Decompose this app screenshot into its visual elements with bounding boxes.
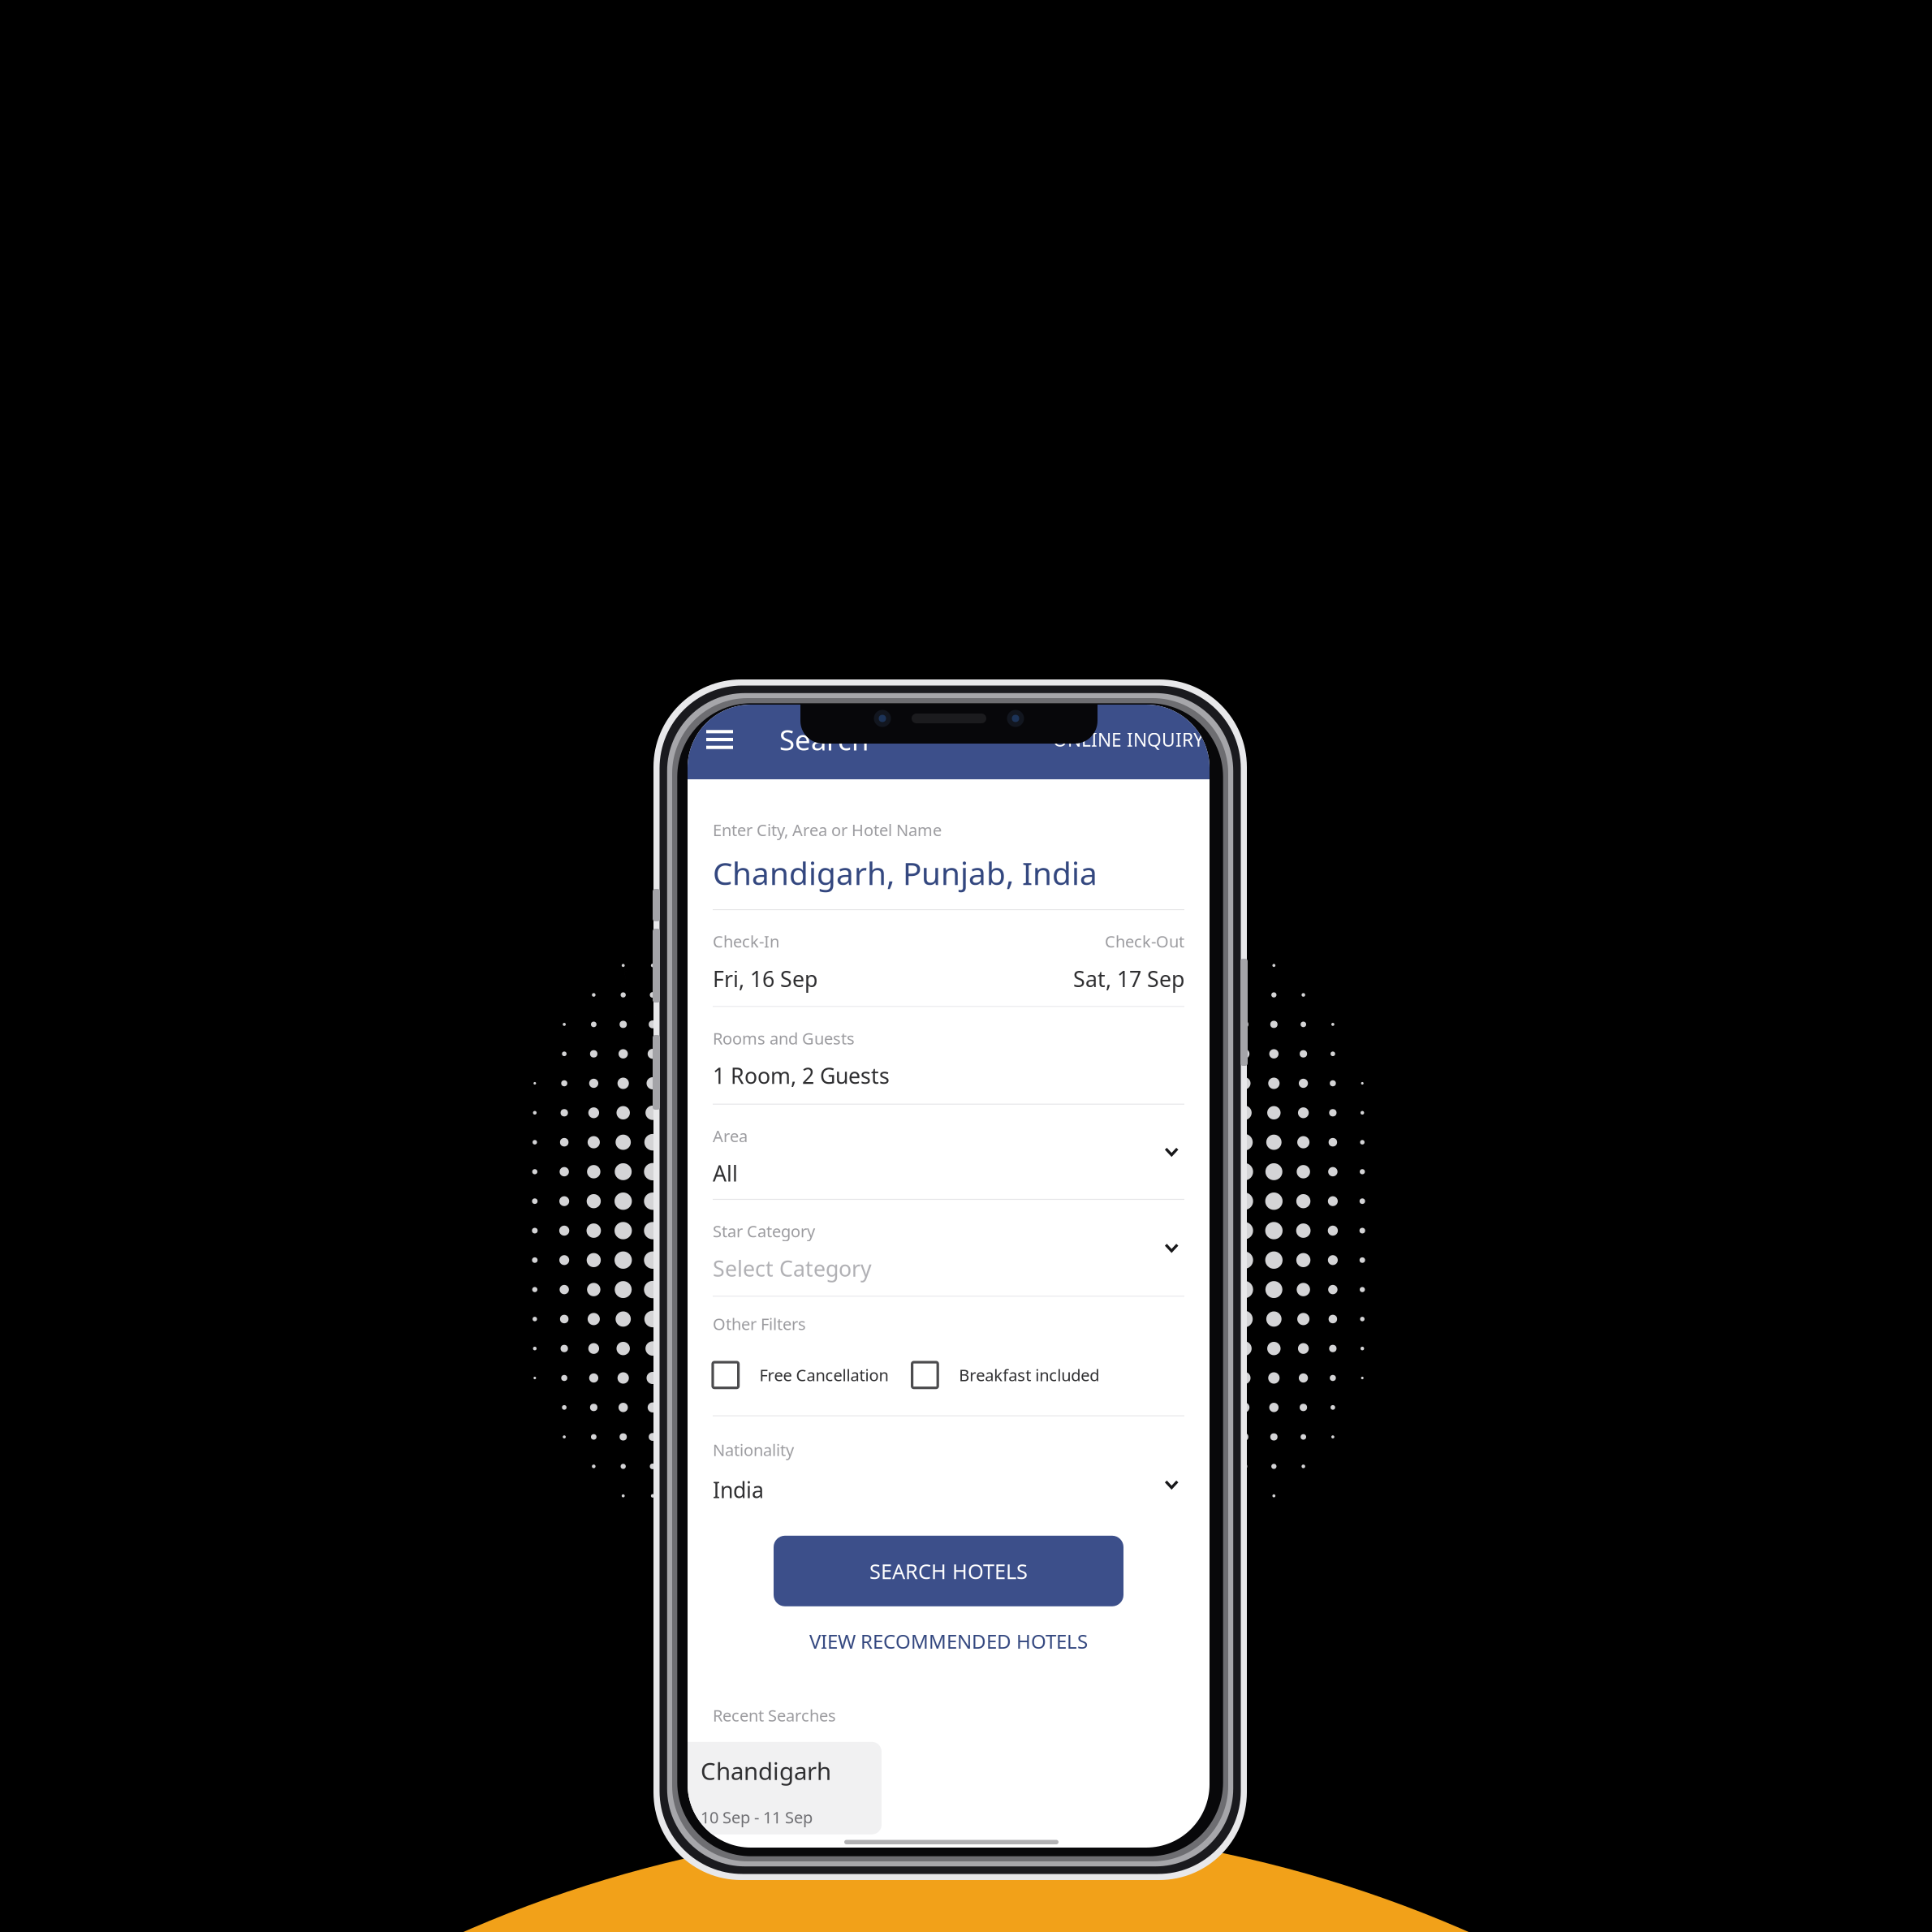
staticText: Breakfast included <box>959 1364 1099 1386</box>
staticText: Check-Out <box>1105 931 1184 952</box>
staticText: VIEW RECOMMENDED HOTELS <box>809 1628 1088 1654</box>
staticText: Search <box>779 721 869 758</box>
button[interactable]: ONLINE INQUIRY <box>1053 713 1210 766</box>
staticText: Check-In <box>713 931 779 952</box>
button[interactable]: Enter City, Area or Hotel Name <box>713 779 1184 909</box>
button[interactable]: Star Category <box>713 1200 1184 1296</box>
staticText: Select Category <box>713 1254 872 1283</box>
staticText: Chandigarh <box>701 1755 831 1787</box>
staticText: Fri, 16 Sep <box>713 964 817 993</box>
button[interactable]: SEARCH HOTELS <box>774 1536 1123 1606</box>
staticText: Other Filters <box>713 1313 806 1335</box>
staticText: SEARCH HOTELS <box>869 1557 1028 1585</box>
staticText: Chandigarh, Punjab, India <box>713 852 1098 894</box>
button[interactable]: Chandigarh <box>674 1742 882 1834</box>
button[interactable]: Check-In <box>713 910 1184 1006</box>
staticText: India <box>713 1475 764 1504</box>
button[interactable]: Breakfast included <box>889 1362 1099 1388</box>
staticText: Free Cancellation <box>759 1364 889 1386</box>
button[interactable]: VIEW RECOMMENDED HOTELS <box>688 1606 1210 1676</box>
staticText: Star Category <box>713 1220 815 1242</box>
staticText: All <box>713 1159 738 1188</box>
button[interactable]: Free Cancellation <box>713 1362 889 1388</box>
staticText: Rooms and Guests <box>713 1027 855 1049</box>
button[interactable]: Rooms and Guests <box>713 1007 1184 1104</box>
button[interactable]: Nationality <box>713 1416 1184 1536</box>
staticText: Enter City, Area or Hotel Name <box>713 819 942 841</box>
staticText: Sat, 17 Sep <box>1073 964 1184 993</box>
button[interactable]: Area <box>713 1105 1184 1199</box>
staticText: Recent Searches <box>713 1705 836 1726</box>
button[interactable]: Menu <box>697 713 742 766</box>
staticText: 1 Room, 2 Guests <box>713 1061 890 1090</box>
staticText: 10 Sep - 11 Sep <box>701 1806 813 1828</box>
staticText: ONLINE INQUIRY <box>1053 727 1204 752</box>
staticText: Area <box>713 1125 748 1147</box>
staticText: Nationality <box>713 1439 794 1461</box>
button[interactable]: Search <box>742 713 869 766</box>
